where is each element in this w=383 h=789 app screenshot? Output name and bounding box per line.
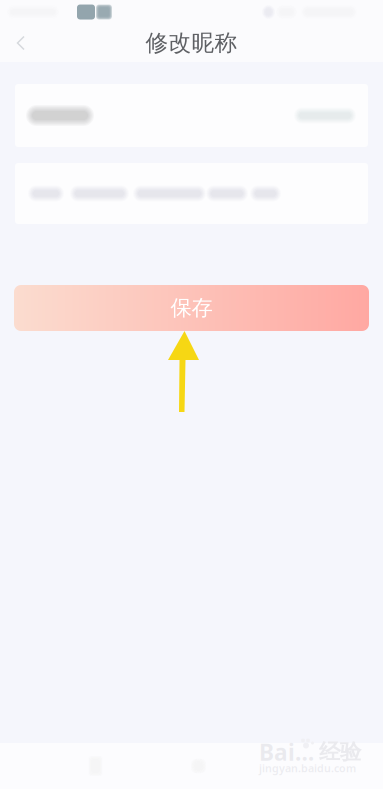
staticText: Baidu	[259, 737, 315, 767]
button[interactable]: 保存	[14, 285, 369, 331]
button[interactable]: 返回	[0, 24, 42, 62]
staticText: jingyan.baidu.com	[259, 761, 356, 775]
staticText: 经验	[319, 739, 361, 765]
staticText: 保存	[170, 295, 212, 321]
staticText: 修改昵称	[145, 29, 237, 57]
